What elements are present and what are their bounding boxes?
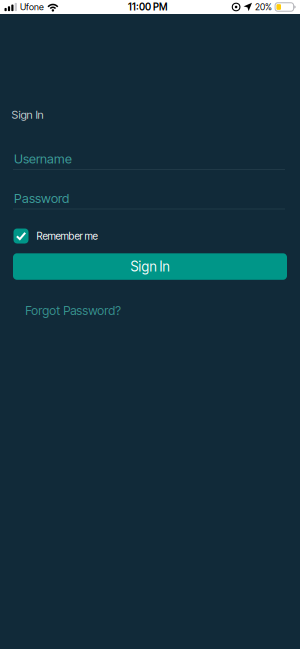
staticText: Sign In	[130, 258, 169, 275]
staticText: 11:00 PM	[128, 1, 167, 13]
staticText: Remember me	[36, 230, 97, 242]
button[interactable]: Remember me	[13, 228, 97, 243]
button[interactable]: Forgot Password?	[25, 303, 121, 318]
staticText: Password	[14, 190, 69, 206]
staticText: Sign In	[11, 108, 43, 122]
button[interactable]: Password	[13, 189, 286, 213]
staticText: 20%	[255, 2, 272, 12]
staticText: Username	[14, 151, 72, 166]
staticText: Forgot Password?	[25, 303, 121, 318]
button[interactable]: Sign In	[13, 253, 287, 280]
button[interactable]: Username	[13, 150, 286, 174]
staticText: Ufone	[20, 2, 44, 12]
